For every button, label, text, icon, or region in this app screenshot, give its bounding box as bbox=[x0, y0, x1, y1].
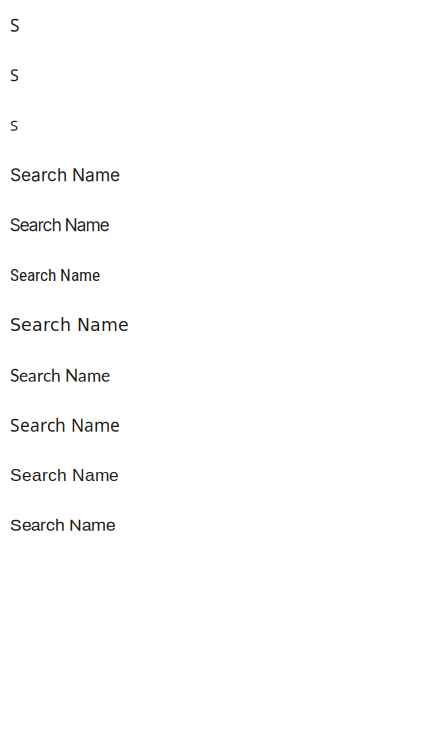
staticText: S bbox=[10, 115, 18, 135]
staticText: Search Name bbox=[10, 214, 109, 235]
staticText: Search Name bbox=[10, 413, 120, 437]
staticText: Search Name bbox=[10, 516, 115, 534]
staticText: Search Name bbox=[10, 164, 120, 185]
staticText: S bbox=[10, 13, 20, 36]
staticText: Search Name bbox=[10, 265, 100, 285]
staticText: S bbox=[10, 64, 19, 86]
staticText: Search Name bbox=[10, 465, 119, 485]
staticText: Search Name bbox=[10, 315, 129, 335]
staticText: Search Name bbox=[10, 365, 110, 385]
